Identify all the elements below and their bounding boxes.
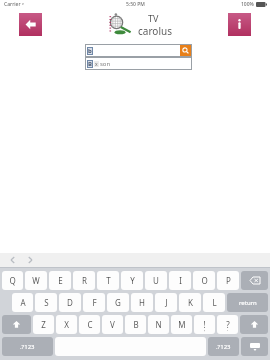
button[interactable]: Next field bbox=[23, 253, 37, 267]
staticText: X bbox=[64, 319, 69, 330]
staticText: Z bbox=[41, 319, 46, 330]
button[interactable]: H bbox=[131, 293, 153, 312]
staticText: x bbox=[95, 61, 98, 67]
button[interactable]: D bbox=[59, 293, 81, 312]
staticText: b bbox=[88, 47, 92, 55]
staticText: K bbox=[188, 297, 193, 308]
staticText: Carrier ᵛ bbox=[4, 1, 24, 8]
button[interactable]: G bbox=[107, 293, 129, 312]
staticText: return bbox=[239, 299, 257, 307]
button[interactable]: ? bbox=[217, 315, 238, 334]
staticText: ! bbox=[203, 319, 206, 330]
button[interactable]: ! bbox=[194, 315, 215, 334]
button[interactable]: X bbox=[56, 315, 77, 334]
button[interactable]: Q bbox=[2, 271, 23, 290]
button[interactable]: A bbox=[12, 293, 33, 312]
staticText: F bbox=[92, 297, 97, 308]
staticText: 5:50 PM bbox=[126, 1, 145, 8]
button[interactable]: Previous field bbox=[5, 253, 19, 267]
button[interactable]: B bbox=[125, 315, 146, 334]
button[interactable]: I bbox=[169, 271, 191, 290]
staticText: ? bbox=[226, 319, 230, 330]
button[interactable]: K bbox=[179, 293, 201, 312]
staticText: A bbox=[20, 297, 26, 308]
staticText: N bbox=[155, 319, 162, 330]
staticText: S bbox=[44, 297, 49, 308]
staticText: . bbox=[227, 326, 229, 333]
staticText: 100% bbox=[241, 1, 254, 8]
staticText: , bbox=[204, 326, 206, 333]
staticText: TV bbox=[148, 12, 159, 24]
button[interactable]: S bbox=[35, 293, 57, 312]
staticText: T bbox=[106, 275, 111, 286]
staticText: .?123 bbox=[20, 343, 35, 351]
staticText: R bbox=[82, 275, 87, 286]
staticText: H bbox=[139, 297, 145, 308]
button[interactable]: B bbox=[85, 57, 192, 70]
button[interactable]: W bbox=[25, 271, 47, 290]
staticText: O bbox=[201, 275, 208, 286]
button[interactable]: Shift bbox=[2, 315, 31, 334]
button[interactable]: .?123 bbox=[208, 337, 239, 356]
button[interactable]: V bbox=[102, 315, 123, 334]
staticText: carolus bbox=[138, 24, 172, 38]
staticText: M bbox=[178, 319, 186, 330]
button[interactable]: M bbox=[171, 315, 192, 334]
button[interactable]: Backspace bbox=[241, 271, 268, 290]
staticText: I bbox=[179, 275, 182, 286]
staticText: V bbox=[110, 319, 115, 330]
staticText: P bbox=[226, 275, 231, 286]
button[interactable]: E bbox=[49, 271, 71, 290]
button[interactable]: b bbox=[85, 44, 192, 57]
button[interactable]: U bbox=[145, 271, 167, 290]
button[interactable]: C bbox=[79, 315, 100, 334]
staticText: J bbox=[165, 297, 168, 308]
staticText: Q bbox=[9, 275, 16, 286]
button[interactable]: Y bbox=[121, 271, 143, 290]
button[interactable]: T bbox=[97, 271, 119, 290]
button[interactable]: Z bbox=[33, 315, 54, 334]
button[interactable]: Back bbox=[19, 13, 42, 36]
staticText: D bbox=[67, 297, 73, 308]
button[interactable]: F bbox=[83, 293, 105, 312]
button[interactable]: Info bbox=[228, 13, 251, 36]
staticText: G bbox=[115, 297, 121, 308]
button[interactable]: N bbox=[148, 315, 169, 334]
button[interactable]: J bbox=[155, 293, 177, 312]
button[interactable]: return bbox=[227, 293, 268, 312]
button[interactable]: P bbox=[217, 271, 239, 290]
staticText: .?123 bbox=[216, 343, 231, 351]
staticText: B bbox=[133, 319, 139, 330]
button[interactable]: .?123 bbox=[2, 337, 53, 356]
button[interactable]: Search bbox=[180, 45, 191, 56]
staticText: C bbox=[87, 319, 93, 330]
staticText: U bbox=[153, 275, 159, 286]
staticText: E bbox=[58, 275, 63, 286]
staticText: B bbox=[88, 60, 92, 68]
staticText: L bbox=[212, 297, 217, 308]
staticText: Y bbox=[130, 275, 135, 286]
button[interactable]: Hide keyboard bbox=[241, 337, 268, 356]
staticText: W bbox=[32, 275, 40, 286]
button[interactable]: R bbox=[73, 271, 95, 290]
staticText: son bbox=[100, 60, 111, 68]
button[interactable]: L bbox=[203, 293, 225, 312]
button[interactable]: Shift bbox=[240, 315, 268, 334]
button[interactable]: O bbox=[193, 271, 215, 290]
